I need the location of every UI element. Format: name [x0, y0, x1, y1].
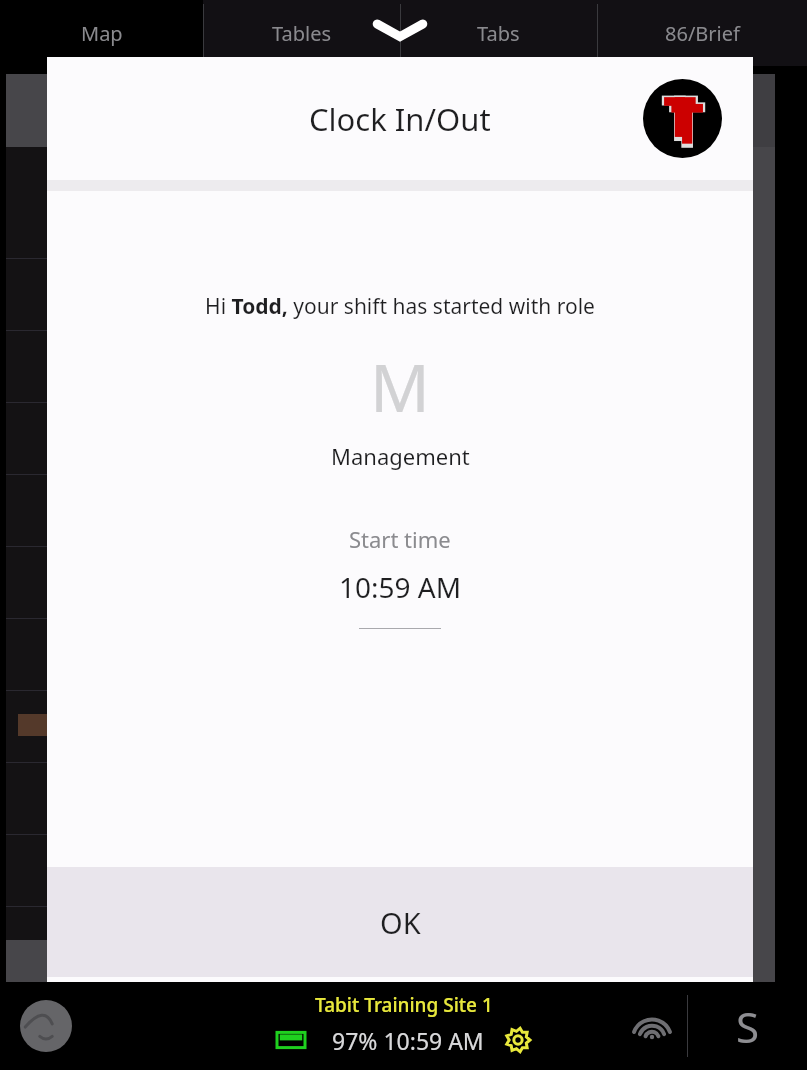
staticText: Clock In/Out	[309, 98, 491, 140]
staticText: Tabs	[477, 20, 520, 47]
button[interactable]: OK	[47, 867, 753, 977]
button[interactable]: Profile	[20, 1000, 72, 1052]
staticText: Management	[331, 441, 470, 471]
button[interactable]: Settings	[502, 1024, 534, 1056]
button[interactable]: Collapse	[355, 0, 445, 60]
button[interactable]: Tabit Training Site 1	[315, 992, 493, 1018]
staticText: Start time	[349, 524, 451, 554]
staticText: Map	[81, 20, 123, 47]
staticText: 86/Brief	[665, 20, 740, 47]
staticText: 10:59 AM	[339, 568, 462, 606]
button[interactable]: Tabs	[400, 0, 597, 66]
button[interactable]: Map	[0, 0, 203, 66]
staticText: S	[736, 998, 760, 1055]
staticText: 97% 10:59 AM	[332, 1025, 484, 1056]
staticText: Tables	[272, 20, 332, 47]
button[interactable]: S	[689, 982, 807, 1070]
button[interactable]: 86/Brief	[597, 0, 807, 66]
button[interactable]: Tables	[203, 0, 400, 66]
other: Logo	[643, 79, 722, 158]
staticText: Hi Todd, your shift has started with rol…	[205, 292, 595, 321]
staticText: OK	[380, 903, 421, 942]
button[interactable]: Battery	[274, 1027, 308, 1053]
button[interactable]: Wi-Fi	[624, 998, 680, 1054]
staticText: M	[370, 341, 430, 431]
